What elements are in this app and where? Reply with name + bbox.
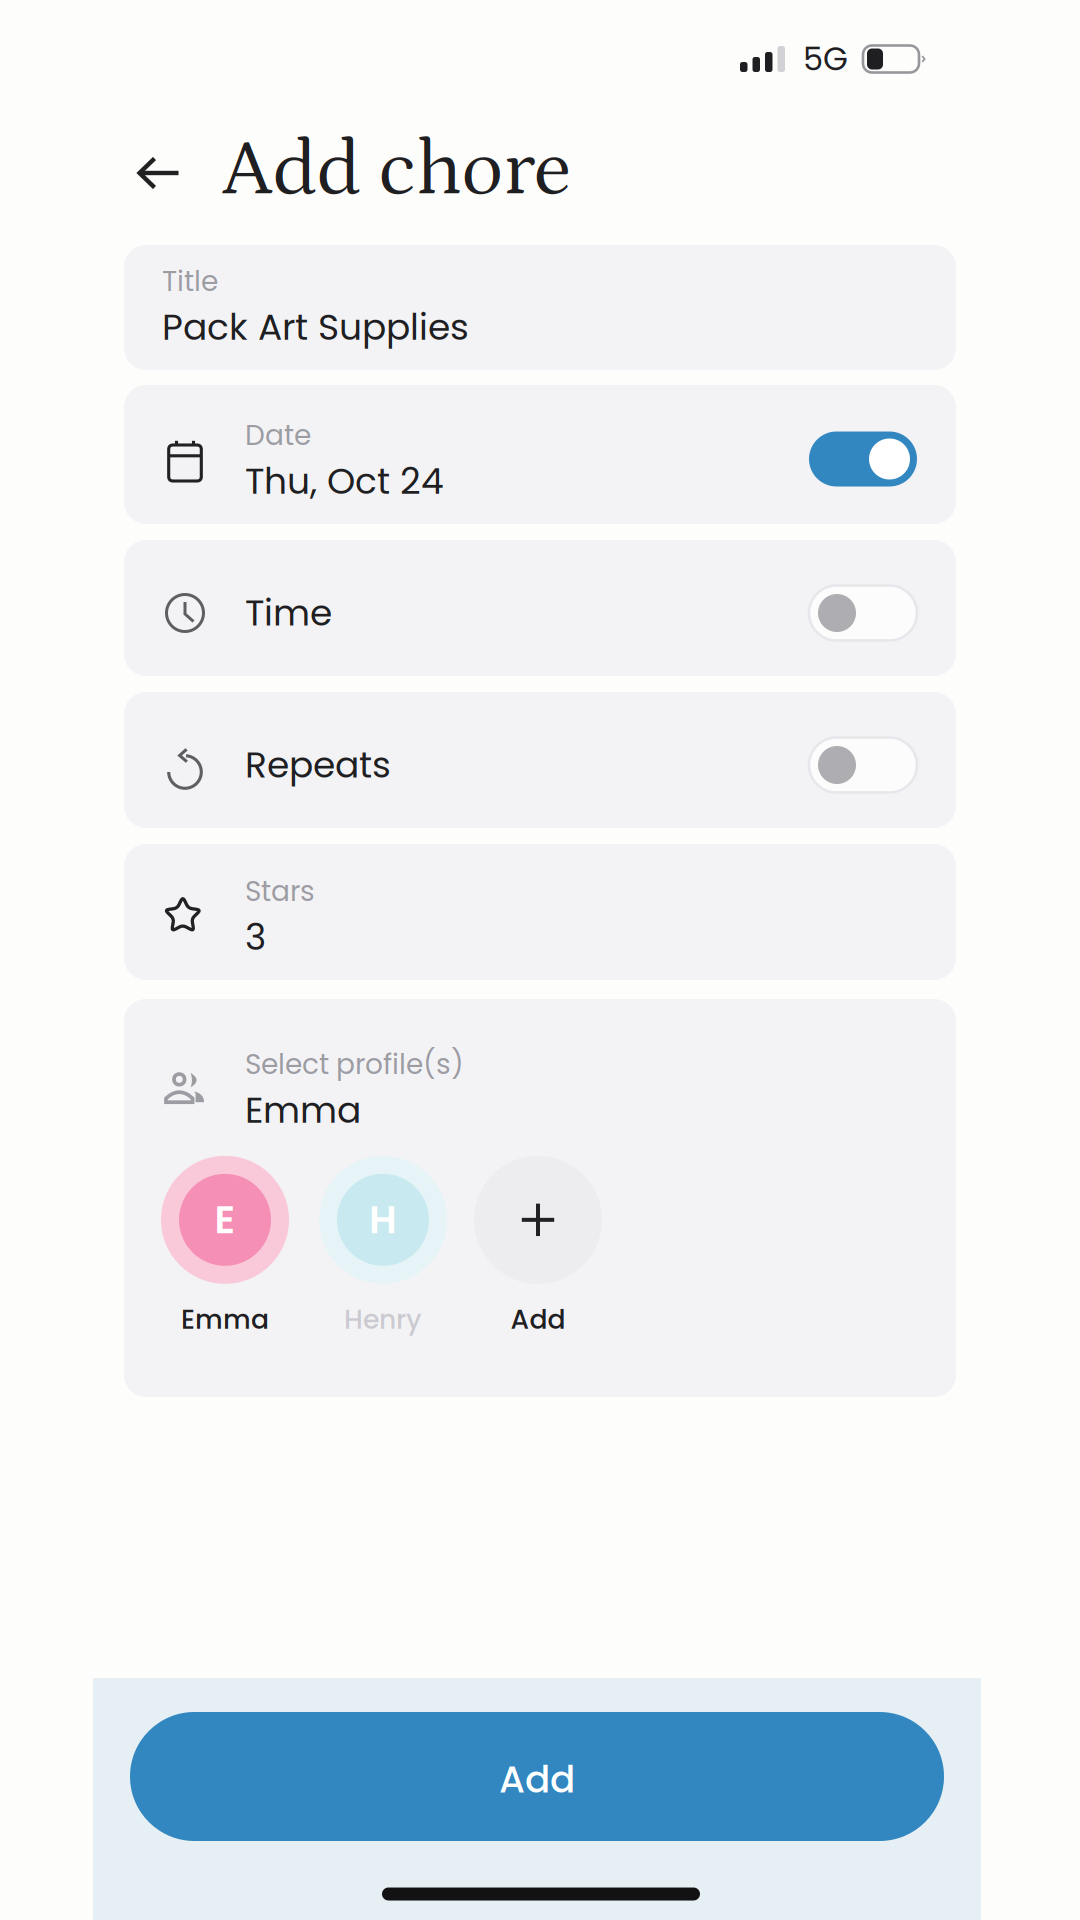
button[interactable]: Back: [121, 138, 197, 208]
button[interactable]: Repeats: [809, 737, 917, 792]
staticText: Henry: [344, 1301, 422, 1338]
staticText: E: [214, 1193, 235, 1247]
staticText: 5G: [803, 37, 848, 81]
staticText: 3: [245, 912, 266, 962]
staticText: Select profile(s): [245, 1045, 464, 1084]
button[interactable]: Date: [809, 431, 917, 486]
staticText: Add chore: [222, 126, 571, 214]
button[interactable]: H: [304, 1157, 462, 1336]
staticText: Add: [510, 1301, 565, 1338]
staticText: Add: [499, 1753, 575, 1806]
staticText: Date: [245, 416, 311, 455]
staticText: Stars: [245, 872, 315, 911]
button[interactable]: Add profile: [459, 1157, 617, 1336]
staticText: Time: [245, 588, 332, 638]
staticText: Repeats: [245, 740, 391, 790]
button[interactable]: E: [146, 1157, 304, 1336]
staticText: Emma: [181, 1301, 269, 1338]
staticText: Title: [162, 262, 218, 301]
staticText: Emma: [245, 1085, 361, 1135]
staticText: Pack Art Supplies: [162, 302, 469, 352]
staticText: Thu, Oct 24: [245, 456, 444, 506]
staticText: H: [369, 1193, 397, 1247]
button[interactable]: Time: [809, 585, 917, 640]
button[interactable]: Add: [130, 1712, 944, 1841]
